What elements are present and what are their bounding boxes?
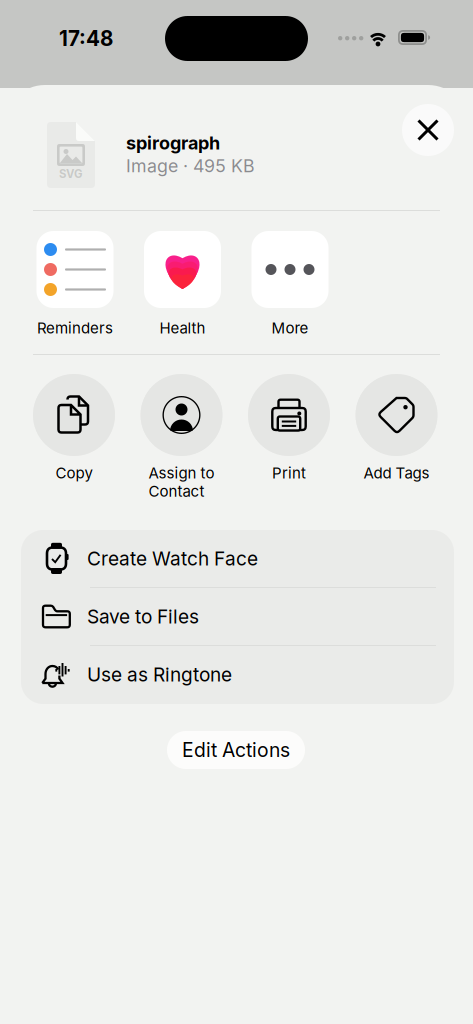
staticText: SVG [59, 167, 83, 181]
staticText: More [271, 319, 308, 337]
staticText: 17:48 [59, 26, 113, 51]
button[interactable]: More [236, 231, 343, 341]
staticText: Copy [55, 464, 92, 482]
button[interactable]: Close [402, 104, 454, 156]
button[interactable]: Add Tags [343, 374, 450, 504]
button[interactable]: Print [235, 374, 342, 504]
staticText: Health [159, 319, 205, 337]
staticText: Print [272, 464, 306, 482]
staticText: Image · 495 KB [126, 155, 255, 176]
button[interactable]: Save to Files [21, 588, 454, 646]
staticText: Edit Actions [182, 738, 290, 762]
button[interactable]: Assign to Contact [128, 374, 235, 504]
staticText: Use as Ringtone [87, 663, 232, 686]
staticText: Assign to Contact [148, 464, 214, 500]
button[interactable]: Reminders [21, 231, 128, 341]
staticText: spirograph [126, 132, 220, 154]
button[interactable]: Edit Actions [167, 731, 305, 769]
staticText: Create Watch Face [87, 547, 258, 570]
staticText: Add Tags [363, 464, 429, 482]
staticText: Save to Files [87, 605, 199, 628]
staticText: Reminders [37, 319, 113, 337]
button[interactable]: Create Watch Face [21, 530, 454, 588]
button[interactable]: Health [129, 231, 236, 341]
button[interactable]: Use as Ringtone [21, 646, 454, 704]
button[interactable]: Copy [20, 374, 127, 504]
